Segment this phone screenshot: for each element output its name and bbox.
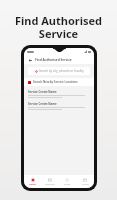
button[interactable]: HOME xyxy=(24,175,41,188)
staticText: STORE xyxy=(82,183,89,186)
staticText: Service Centre Name xyxy=(28,90,57,94)
button[interactable]: MORE xyxy=(58,175,76,188)
button[interactable]: Service Centre Name xyxy=(24,88,94,100)
button[interactable]: Search by city, pincode or locality xyxy=(28,67,90,75)
staticText: MORE xyxy=(64,183,71,186)
button[interactable]: SERVICES xyxy=(41,175,58,188)
button[interactable]: STORE xyxy=(76,175,94,188)
button[interactable]: Search Nearby Service Locations xyxy=(24,78,94,86)
staticText: Near Your Location xyxy=(6,42,111,70)
button[interactable]: Back xyxy=(27,57,33,63)
staticText: Search Nearby Service Locations xyxy=(33,80,78,84)
staticText: Service Centre Name xyxy=(28,102,57,106)
button[interactable]: Service Centre Name xyxy=(24,100,94,112)
staticText: SERVICES xyxy=(45,183,55,186)
staticText: Search by city, pincode or locality xyxy=(39,69,84,73)
staticText: Find Authorised Service xyxy=(35,58,72,62)
staticText: Find Authorised Service xyxy=(6,13,111,41)
staticText: HOME xyxy=(29,183,36,186)
